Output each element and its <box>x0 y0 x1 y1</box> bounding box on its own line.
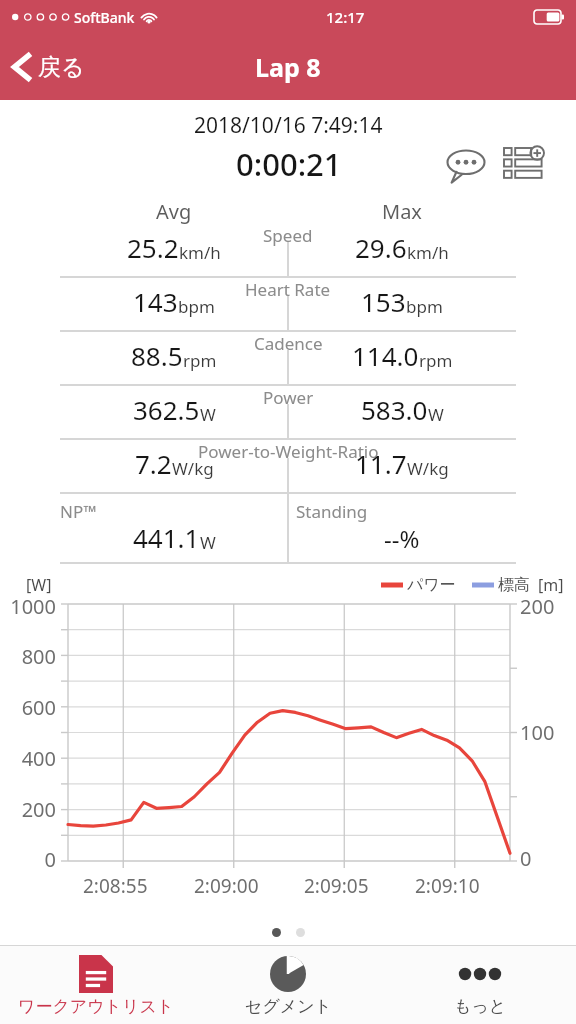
staticText: [W] <box>26 574 52 596</box>
staticText: W/kg <box>407 457 449 480</box>
staticText: 0 <box>44 846 56 872</box>
staticText: Cadence <box>254 332 323 355</box>
staticText: Power <box>263 386 314 409</box>
staticText: 7.2 <box>135 446 172 481</box>
staticText: rpm <box>419 349 453 372</box>
staticText: 25.2 <box>127 230 179 265</box>
staticText: 200 <box>520 593 555 620</box>
staticText: 標高 <box>498 575 530 595</box>
staticText: 100 <box>520 719 555 746</box>
staticText: rpm <box>183 349 217 372</box>
staticText: 2:09:00 <box>194 873 259 899</box>
staticText: 583.0 <box>361 392 428 427</box>
button[interactable]: セグメント <box>192 946 384 1024</box>
staticText: 114.0 <box>352 338 419 373</box>
staticText: 600 <box>21 694 56 721</box>
staticText: NP™ <box>60 500 97 523</box>
staticText: もっと <box>454 996 507 1017</box>
staticText: 153 <box>361 284 406 319</box>
button[interactable]: 戻る <box>0 46 99 88</box>
staticText: 29.6 <box>355 230 407 265</box>
staticText: Avg <box>156 198 192 224</box>
staticText: bpm <box>406 295 443 318</box>
staticText: W <box>200 403 216 426</box>
staticText: W <box>428 403 444 426</box>
staticText: セグメント <box>245 996 332 1017</box>
staticText: 0:00:21 <box>236 143 342 185</box>
staticText: [m] <box>538 574 564 596</box>
staticText: km/h <box>179 241 221 264</box>
staticText: 143 <box>133 284 178 319</box>
staticText: km/h <box>407 241 449 264</box>
staticText: 12:17 <box>326 7 365 27</box>
staticText: 0 <box>520 845 532 872</box>
staticText: Heart Rate <box>245 278 331 301</box>
button[interactable]: Add to list <box>500 142 548 190</box>
staticText: 362.5 <box>133 392 200 427</box>
staticText: Max <box>382 198 422 224</box>
staticText: Standing <box>296 500 368 523</box>
staticText: 800 <box>21 643 56 670</box>
staticText: SoftBank <box>74 8 135 27</box>
staticText: 2:08:55 <box>83 873 148 899</box>
staticText: 2:09:10 <box>415 873 480 899</box>
staticText: 2018/10/16 7:49:14 <box>194 111 383 140</box>
staticText: 441.1 <box>133 520 200 555</box>
staticText: bpm <box>178 295 215 318</box>
button[interactable]: もっと <box>384 946 576 1024</box>
staticText: 400 <box>21 745 56 772</box>
staticText: 戻る <box>38 53 85 82</box>
staticText: 200 <box>21 796 56 823</box>
staticText: 1000 <box>10 593 56 620</box>
staticText: 2:09:05 <box>304 873 369 899</box>
staticText: 88.5 <box>131 338 183 373</box>
staticText: Lap 8 <box>255 50 321 84</box>
button[interactable]: ワークアウトリスト <box>0 946 192 1024</box>
staticText: W/kg <box>172 457 214 480</box>
button[interactable]: Comments <box>442 142 490 190</box>
staticText: Power-to-Weight-Ratio <box>198 440 379 463</box>
staticText: Speed <box>263 224 313 247</box>
staticText: W <box>200 531 216 554</box>
staticText: パワー <box>407 575 456 595</box>
staticText: ワークアウトリスト <box>18 996 175 1017</box>
staticText: --% <box>384 522 420 555</box>
staticText: 11.7 <box>355 446 407 481</box>
